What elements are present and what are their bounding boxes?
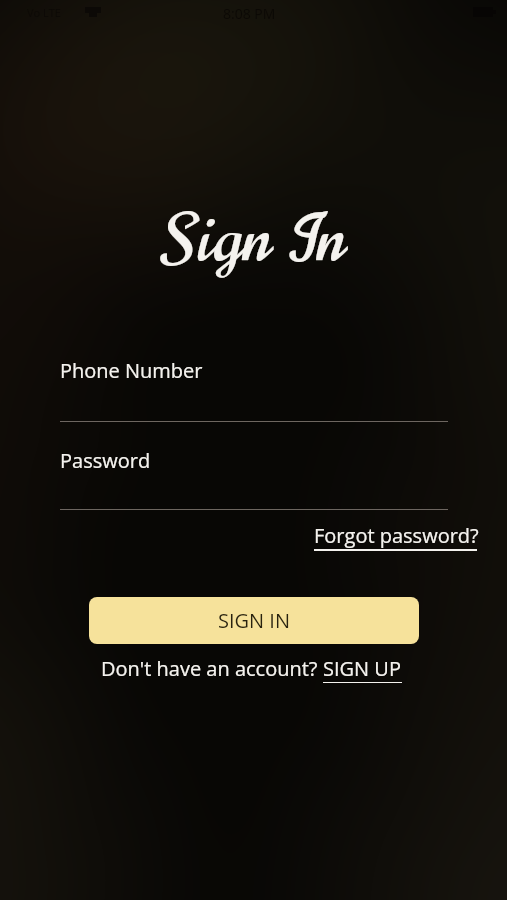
other: Wi-Fi signal <box>84 4 102 19</box>
staticText: Don't have an account? <box>101 655 323 682</box>
button[interactable]: SIGN IN <box>89 597 419 644</box>
staticText: Sign In <box>0 192 507 285</box>
staticText: Forgot password? <box>314 522 479 549</box>
button[interactable]: Forgot password? <box>314 520 479 556</box>
button[interactable]: SIGN UP <box>323 653 402 687</box>
staticText: Phone Number <box>60 357 203 384</box>
button[interactable]: Password <box>60 442 448 510</box>
staticText: SIGN UP <box>323 655 401 682</box>
staticText: SIGN IN <box>218 607 290 634</box>
button[interactable]: Phone Number <box>60 352 448 422</box>
staticText: Password <box>60 447 151 474</box>
